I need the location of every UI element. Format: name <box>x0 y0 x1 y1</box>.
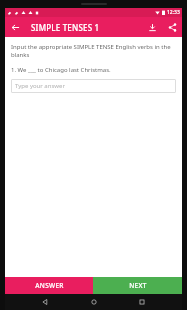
button[interactable]: Back <box>5 17 25 37</box>
staticText: 12:33 <box>167 9 180 16</box>
staticText: NEXT <box>129 281 147 290</box>
button[interactable]: Back <box>37 294 53 310</box>
staticText: 1. We ___ to Chicago last Christmas. <box>11 66 111 74</box>
button[interactable]: Home <box>86 294 102 310</box>
staticText: ANSWER <box>35 281 64 290</box>
button[interactable]: NEXT <box>93 277 182 294</box>
staticText: Input the appropriate SIMPLE TENSE Engli… <box>11 43 176 59</box>
button[interactable]: ANSWER <box>5 277 93 294</box>
button[interactable]: Type your answer <box>11 79 176 93</box>
button[interactable]: Download <box>142 17 162 37</box>
button[interactable]: Recents <box>134 294 150 310</box>
staticText: Type your answer <box>15 82 65 90</box>
button[interactable]: Share <box>162 17 182 37</box>
staticText: SIMPLE TENSES 1 <box>31 22 100 33</box>
